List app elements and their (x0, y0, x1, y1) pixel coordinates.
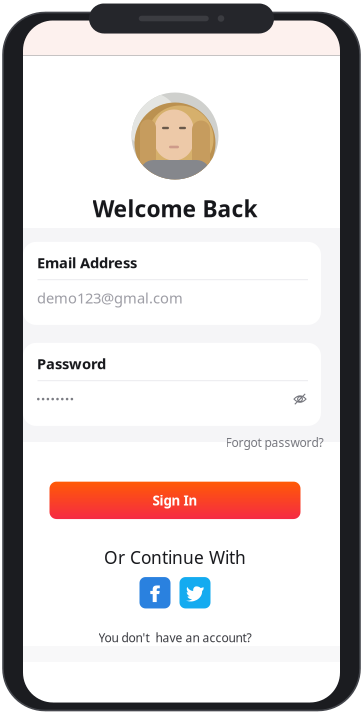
staticText: Or Continue With (104, 546, 246, 569)
staticText: Password (37, 354, 106, 373)
staticText: Welcome Back (92, 193, 257, 223)
button[interactable]: Continue with Facebook (139, 577, 170, 608)
button[interactable]: Show password (291, 389, 309, 409)
button[interactable]: Forgot password? (19, 434, 330, 450)
staticText: demo123@gmal.com (37, 288, 183, 308)
staticText: Forgot password? (225, 434, 323, 450)
staticText: Email Address (37, 253, 137, 272)
button[interactable]: Continue with Twitter (179, 577, 210, 608)
staticText: Sign In (152, 491, 197, 509)
button[interactable]: Sign In (49, 482, 300, 519)
staticText: You don't have an account? (98, 630, 251, 646)
button[interactable]: You don't have an account? (23, 630, 327, 646)
